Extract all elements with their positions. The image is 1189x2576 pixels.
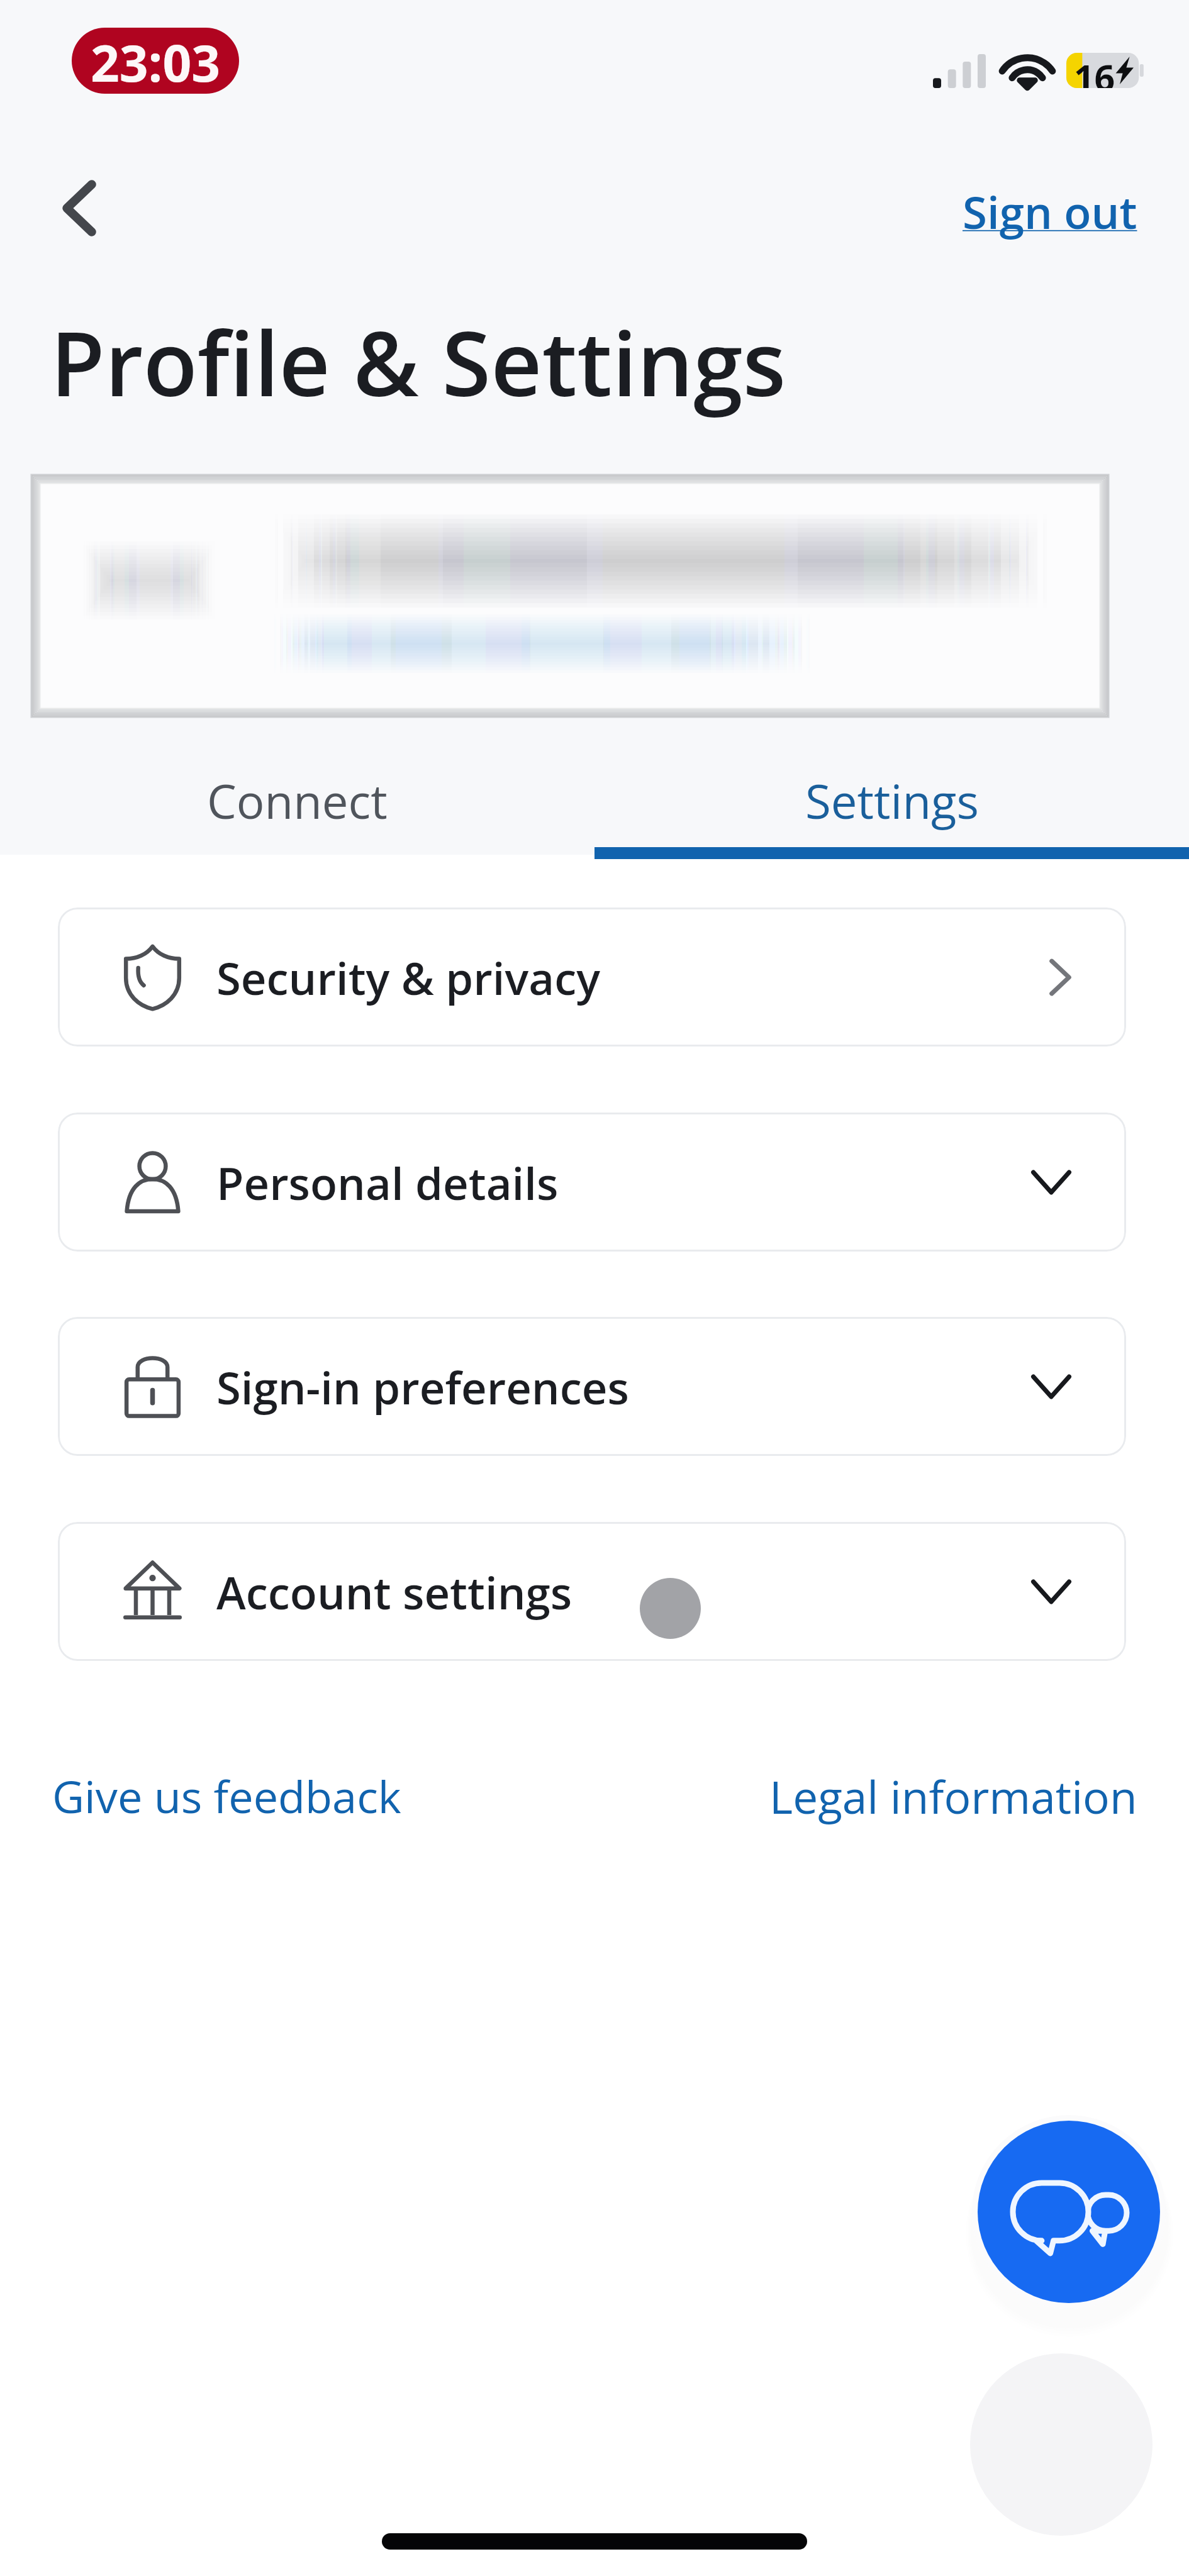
button[interactable]: Personal details [58,1113,1126,1252]
staticText: 23:03 [91,28,221,94]
button[interactable]: Security & privacy [58,908,1126,1046]
staticText: Personal details [216,1152,559,1213]
button[interactable]: Account settings [58,1522,1126,1661]
staticText: 16 [1074,53,1115,88]
button[interactable] [31,475,1108,717]
button[interactable]: Sign out [963,181,1137,241]
staticText: Sign out [963,181,1137,241]
button[interactable]: Back [38,167,120,249]
staticText: Security & privacy [216,947,601,1008]
button[interactable]: Settings [594,761,1189,840]
staticText: Legal information [769,1766,1137,1827]
staticText: Sign-in preferences [216,1357,629,1417]
button[interactable]: Legal information [769,1766,1137,1827]
staticText: Give us feedback [52,1766,401,1826]
staticText: Settings [805,769,979,832]
staticText: Connect [207,769,388,832]
button[interactable]: Connect [0,761,594,840]
staticText: Profile & Settings [50,301,786,422]
button[interactable]: Give us feedback [52,1766,401,1826]
button[interactable]: Chat with us [978,2121,1160,2303]
button[interactable]: Sign-in preferences [58,1317,1126,1456]
staticText: Account settings [216,1562,572,1622]
